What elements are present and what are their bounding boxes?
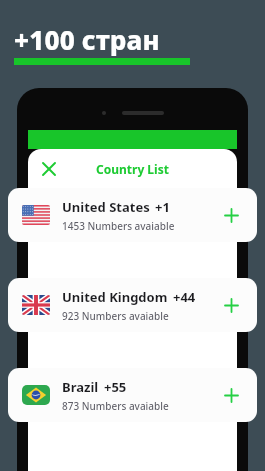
- staticText: Country List: [96, 161, 169, 177]
- button[interactable]: Brazil: [8, 368, 257, 422]
- staticText: 1453 Numbers avaiable: [62, 219, 175, 233]
- button[interactable]: Add United Kingdom: [219, 293, 243, 317]
- staticText: +49: [151, 399, 168, 412]
- staticText: Canada: [103, 309, 139, 322]
- staticText: +44: [173, 288, 196, 306]
- staticText: United States: [62, 198, 150, 216]
- button[interactable]: Add Brazil: [219, 383, 243, 407]
- button[interactable]: Add United States: [219, 203, 243, 227]
- staticText: +100 стран: [14, 22, 160, 57]
- button[interactable]: Close: [36, 156, 62, 182]
- button[interactable]: United Kingdom: [8, 278, 257, 332]
- button[interactable]: Canada: [42, 301, 223, 341]
- staticText: 873 Numbers avaiable: [62, 399, 169, 413]
- staticText: +1: [155, 198, 170, 216]
- button[interactable]: Germany: [42, 391, 223, 431]
- staticText: Russia: [103, 219, 134, 232]
- staticText: +1: [143, 309, 154, 322]
- staticText: 923 Numbers avaiable: [62, 309, 169, 323]
- button[interactable]: United States: [8, 188, 257, 242]
- staticText: United Kingdom: [62, 288, 168, 306]
- staticText: Brazil: [62, 378, 99, 396]
- staticText: +55: [104, 378, 127, 396]
- staticText: +7: [138, 219, 149, 232]
- staticText: Germany: [103, 399, 147, 412]
- button[interactable]: Russia: [42, 211, 223, 251]
